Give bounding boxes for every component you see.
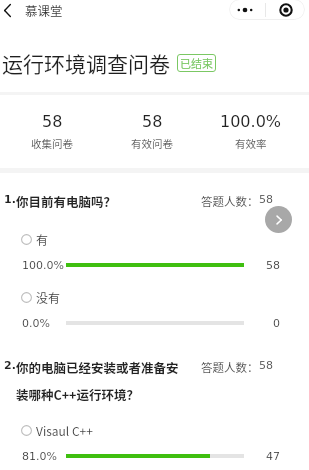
staticText: 运行环境调查问卷 <box>2 48 170 78</box>
staticText: 收集问卷 <box>31 136 73 151</box>
staticText: 81.0% <box>22 450 57 463</box>
button[interactable]: Close mini program <box>266 0 305 20</box>
button[interactable]: Next question <box>265 206 292 233</box>
staticText: 慕课堂 <box>25 1 63 19</box>
staticText: 你目前有电脑吗？ <box>16 192 117 210</box>
staticText: 有效率 <box>235 136 267 151</box>
staticText: 58 <box>244 259 280 272</box>
staticText: 0.0% <box>22 317 50 330</box>
staticText: Visaul C++ <box>36 422 93 439</box>
staticText: 58 <box>142 112 163 131</box>
staticText: 1. <box>4 193 16 206</box>
staticText: 47 <box>244 450 280 463</box>
staticText: 已结束 <box>180 55 213 71</box>
staticText: 58 <box>259 193 273 206</box>
staticText: 有效问卷 <box>131 136 173 151</box>
staticText: 答题人数： <box>201 193 259 210</box>
staticText: 100.0% <box>220 112 282 131</box>
staticText: 58 <box>259 359 273 372</box>
staticText: 100.0% <box>22 259 64 272</box>
staticText: 你的电脑已经安装或者准备安 装哪种C++运行环境？ <box>16 358 179 404</box>
staticText: 没有 <box>36 289 61 306</box>
button[interactable]: More options <box>229 0 265 20</box>
staticText: 0 <box>244 317 280 330</box>
staticText: 58 <box>42 112 63 131</box>
staticText: 2. <box>4 359 16 372</box>
staticText: 有 <box>36 231 49 248</box>
button[interactable]: 慕课堂 <box>0 1 69 19</box>
staticText: 答题人数： <box>201 359 259 376</box>
